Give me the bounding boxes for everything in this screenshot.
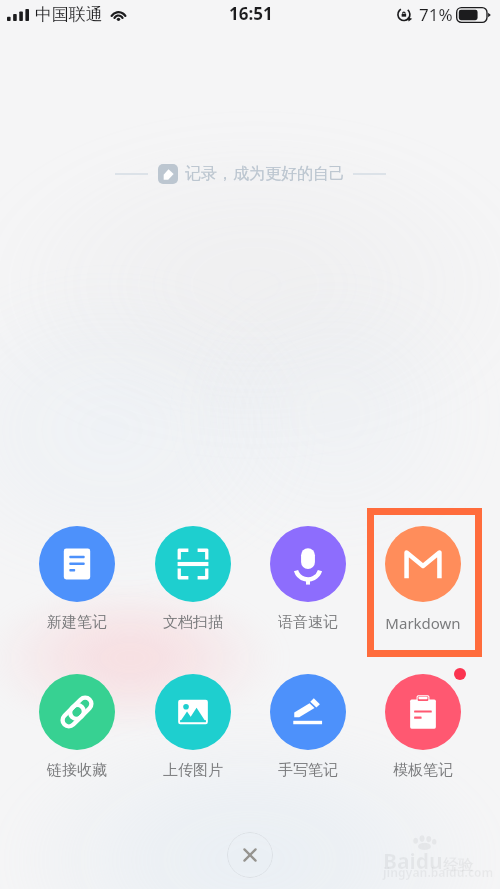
button[interactable]: 文档扫描 [135, 513, 250, 642]
staticText: 模板笔记 [393, 761, 453, 780]
staticText: Markdown [385, 613, 461, 633]
staticText: 记录，成为更好的自己 [185, 164, 345, 184]
button[interactable]: 模板笔记 [365, 661, 480, 790]
staticText: 语音速记 [278, 613, 338, 632]
staticText: 上传图片 [163, 761, 223, 780]
staticText: 链接收藏 [47, 761, 107, 780]
staticText: 新建笔记 [47, 613, 107, 632]
staticText: 文档扫描 [163, 613, 223, 632]
button[interactable]: 新建笔记 [19, 513, 134, 642]
button[interactable]: 手写笔记 [250, 661, 365, 790]
button[interactable]: Markdown [365, 513, 480, 643]
staticText: 中国联通 [35, 4, 103, 25]
button[interactable]: 上传图片 [135, 661, 250, 790]
staticText: jingyan.baidu.com [383, 864, 494, 880]
staticText: 经验 [443, 856, 473, 875]
staticText: 71% [419, 3, 453, 26]
button[interactable]: 链接收藏 [19, 661, 134, 790]
button[interactable]: 语音速记 [250, 513, 365, 642]
staticText: 手写笔记 [278, 761, 338, 780]
staticText: 16:51 [229, 2, 273, 25]
staticText: Baidu [383, 847, 443, 876]
button[interactable]: Close [227, 832, 273, 878]
